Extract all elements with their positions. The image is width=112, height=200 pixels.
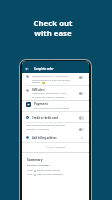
button[interactable] (22, 100, 89, 110)
button[interactable] (22, 74, 89, 86)
staticText: Add billing address (32, 136, 57, 140)
staticText: Save payment data securely to faster pay… (26, 124, 65, 130)
staticText: SATURDAY, NOVEMBER 5 (27, 164, 50, 167)
button[interactable]: Toggle (79, 128, 84, 131)
staticText: Used only to contact you in case of issu… (32, 92, 66, 98)
button[interactable] (22, 112, 89, 120)
staticText: The transaction is securely encrypted (34, 107, 69, 110)
staticText: Returns will start for 7 days of the ite… (32, 75, 71, 81)
button[interactable] (22, 87, 89, 98)
staticText: Boston (South Station) (37, 169, 60, 172)
button[interactable]: Back (25, 67, 29, 71)
button[interactable]: Open (80, 136, 84, 140)
staticText: I HAVE A COUPON (46, 146, 66, 149)
staticText: Check out with ease (0, 18, 109, 38)
button[interactable]: Toggle (79, 76, 84, 79)
staticText: New York (Port Authority) (37, 173, 64, 176)
staticText: Payment (34, 102, 48, 106)
staticText: Delivery (32, 81, 41, 84)
button[interactable] (22, 123, 89, 132)
staticText: 16:20 (27, 173, 33, 176)
button[interactable]: Toggle (79, 92, 84, 95)
button[interactable] (22, 135, 89, 143)
staticText: Summary (27, 157, 43, 161)
staticText: Credit or debit card (32, 116, 58, 120)
staticText: 10:45 (27, 169, 33, 172)
staticText: Complete order (34, 67, 54, 70)
button[interactable] (22, 61, 89, 73)
button[interactable]: I HAVE A COUPON (22, 143, 89, 151)
staticText: SMS alert (32, 88, 45, 92)
